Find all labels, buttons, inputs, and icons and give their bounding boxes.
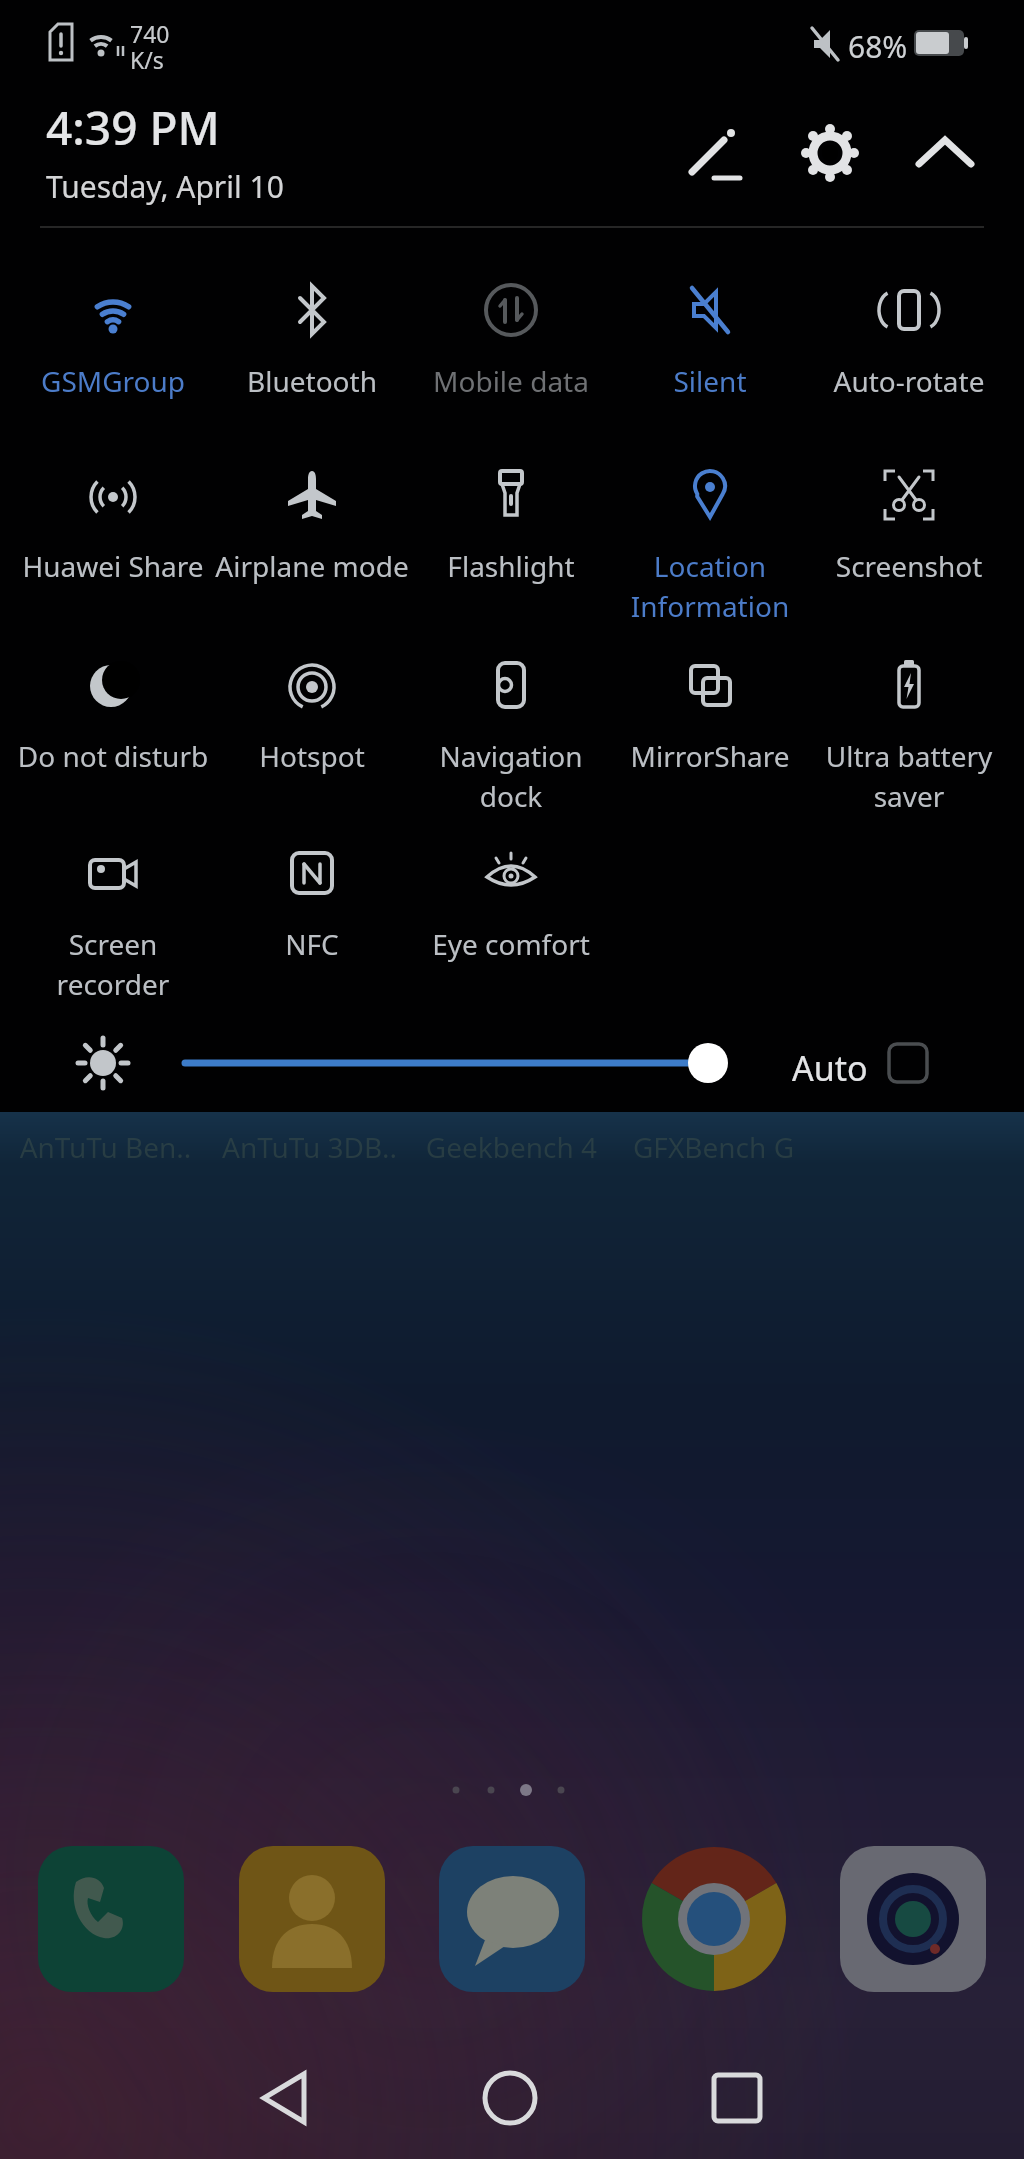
button[interactable]: Eye comfort bbox=[405, 841, 617, 963]
staticText: Silent bbox=[604, 362, 816, 400]
button[interactable] bbox=[682, 122, 746, 186]
button[interactable] bbox=[798, 121, 862, 185]
staticText: Auto bbox=[792, 1045, 868, 1091]
button[interactable]: Location Information bbox=[604, 463, 816, 626]
button[interactable]: Screen recorder bbox=[7, 841, 219, 1004]
staticText: Geekbench 4 bbox=[414, 1128, 609, 1166]
staticText: 68% bbox=[848, 26, 908, 67]
staticText: Flashlight bbox=[405, 547, 617, 585]
staticText: AnTuTu Ben.. bbox=[8, 1128, 203, 1166]
staticText: Location Information bbox=[604, 547, 816, 626]
button[interactable] bbox=[915, 128, 975, 176]
button[interactable]: Silent bbox=[604, 278, 816, 400]
button[interactable]: GSMGroup bbox=[7, 278, 219, 400]
button[interactable]: Navigation dock bbox=[405, 653, 617, 816]
staticText: GFXBench G bbox=[616, 1128, 811, 1166]
staticText: Ultra battery saver bbox=[803, 737, 1015, 816]
staticText: Bluetooth bbox=[206, 362, 418, 400]
button[interactable] bbox=[477, 2066, 543, 2132]
staticText: Do not disturb bbox=[7, 737, 219, 775]
button[interactable] bbox=[840, 1846, 986, 1992]
button[interactable] bbox=[38, 1846, 184, 1992]
staticText: 740 bbox=[130, 18, 170, 49]
button[interactable]: MirrorShare bbox=[604, 653, 816, 775]
staticText: AnTuTu 3DB.. bbox=[212, 1128, 407, 1166]
staticText: Screen recorder bbox=[7, 925, 219, 1004]
staticText: NFC bbox=[206, 925, 418, 963]
button[interactable]: Bluetooth bbox=[206, 278, 418, 400]
staticText: Huawei Share bbox=[7, 547, 219, 585]
staticText: Auto-rotate bbox=[803, 362, 1015, 400]
staticText: K/s bbox=[130, 44, 164, 75]
button[interactable]: Airplane mode bbox=[206, 463, 418, 585]
staticText: Navigation dock bbox=[405, 737, 617, 816]
button[interactable]: Auto-rotate bbox=[803, 278, 1015, 400]
staticText: MirrorShare bbox=[604, 737, 816, 775]
staticText: Eye comfort bbox=[405, 925, 617, 963]
staticText: Screenshot bbox=[803, 547, 1015, 585]
button[interactable]: Huawei Share bbox=[7, 463, 219, 585]
button[interactable]: Do not disturb bbox=[7, 653, 219, 775]
button[interactable]: Mobile data bbox=[405, 278, 617, 400]
button[interactable] bbox=[641, 1846, 787, 1992]
button[interactable] bbox=[439, 1846, 585, 1992]
staticText: Hotspot bbox=[206, 737, 418, 775]
staticText: Airplane mode bbox=[206, 547, 418, 585]
button[interactable] bbox=[704, 2066, 770, 2132]
button[interactable]: Ultra battery saver bbox=[803, 653, 1015, 816]
button[interactable]: NFC bbox=[206, 841, 418, 963]
button[interactable] bbox=[252, 2066, 318, 2132]
button[interactable]: Hotspot bbox=[206, 653, 418, 775]
button[interactable] bbox=[239, 1846, 385, 1992]
staticText: Mobile data bbox=[405, 362, 617, 400]
button[interactable]: Flashlight bbox=[405, 463, 617, 585]
button[interactable] bbox=[886, 1041, 930, 1085]
button[interactable]: Screenshot bbox=[803, 463, 1015, 585]
staticText: Tuesday, April 10 bbox=[46, 166, 284, 207]
staticText: 4:39 PM bbox=[46, 96, 220, 159]
staticText: GSMGroup bbox=[7, 362, 219, 400]
